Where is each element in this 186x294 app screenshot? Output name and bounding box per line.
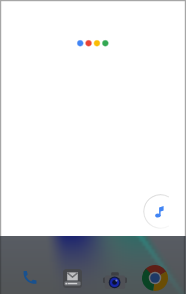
- button[interactable]: Chrome: [142, 265, 168, 291]
- button[interactable]: Camera: [103, 269, 127, 293]
- button[interactable]: SoftBank Mail: [63, 269, 82, 288]
- button[interactable]: Play music: [143, 194, 178, 229]
- button[interactable]: Phone: [21, 268, 39, 286]
